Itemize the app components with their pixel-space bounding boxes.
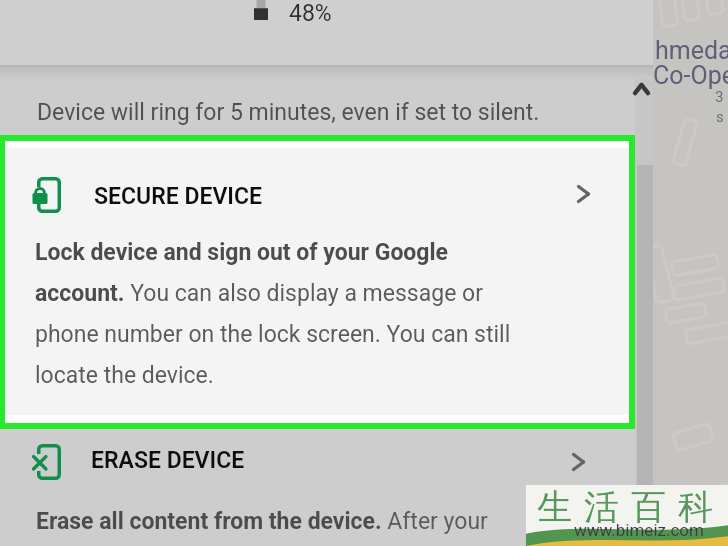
button[interactable]: SECURE DEVICE: [5, 141, 629, 423]
staticText: SECURE DEVICE: [94, 183, 262, 210]
staticText: Device will ring for 5 minutes, even if …: [37, 99, 540, 126]
staticText: ERASE DEVICE: [91, 447, 245, 474]
button[interactable]: ERASE DEVICE: [0, 431, 635, 493]
staticText: 3: [715, 88, 724, 106]
other: Collapse panel: [635, 83, 648, 94]
staticText: 生活百科: [531, 485, 719, 529]
other: Open: [577, 185, 590, 203]
staticText: Erase all content from the device. After…: [36, 508, 488, 535]
staticText: www.bimeiz.com: [574, 520, 704, 540]
staticText: Co-Oper: [653, 61, 728, 90]
other: Open: [572, 453, 585, 471]
staticText: Lock device and sign out of your Google …: [35, 239, 530, 389]
staticText: 48%: [289, 0, 332, 27]
staticText: hmedab: [655, 36, 728, 65]
staticText: s: [716, 108, 724, 126]
